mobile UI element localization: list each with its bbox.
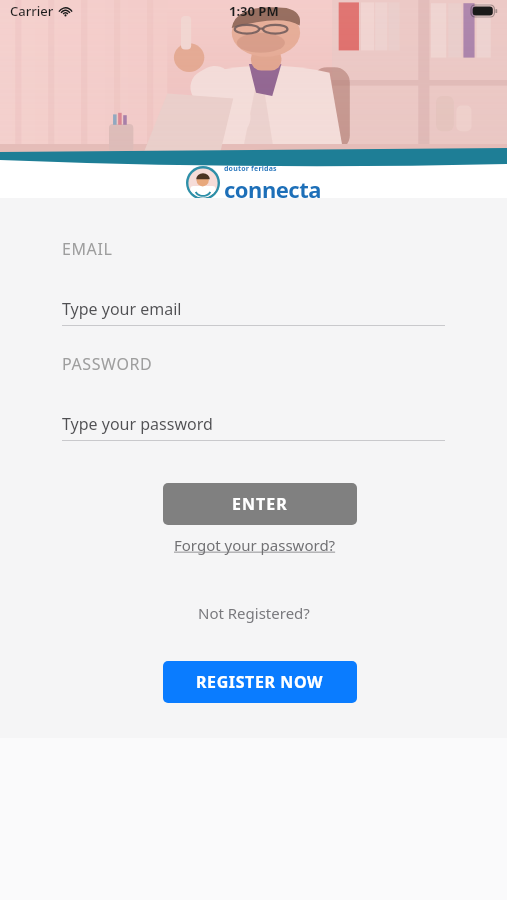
- staticText: connecta: [224, 174, 321, 202]
- staticText: Carrier: [10, 2, 54, 20]
- staticText: Type your email: [62, 298, 182, 320]
- button[interactable]: ENTER: [163, 483, 357, 525]
- staticText: Forgot your password?: [174, 535, 336, 555]
- staticText: 1:30 PM: [229, 2, 279, 20]
- staticText: Type your password: [62, 413, 213, 435]
- staticText: Not Registered?: [198, 603, 310, 623]
- staticText: EMAIL: [62, 238, 113, 260]
- button[interactable]: REGISTER NOW: [163, 661, 357, 703]
- staticText: PASSWORD: [62, 353, 153, 375]
- button[interactable]: Forgot your password?: [170, 533, 340, 557]
- staticText: ENTER: [232, 493, 288, 515]
- staticText: doutor feridas: [224, 164, 277, 174]
- staticText: REGISTER NOW: [196, 671, 324, 693]
